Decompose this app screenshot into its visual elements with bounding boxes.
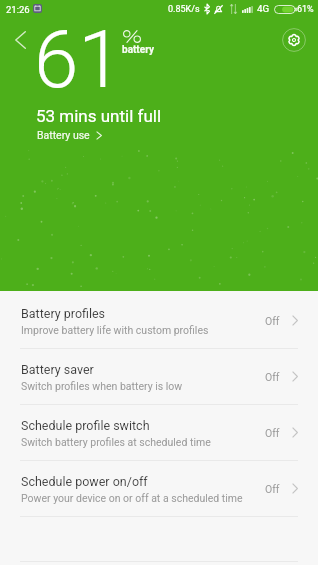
- staticText: 53 mins until full: [36, 106, 162, 126]
- staticText: 4G: [257, 3, 270, 14]
- staticText: 1: [78, 13, 123, 107]
- staticText: 6: [34, 13, 79, 107]
- staticText: Improve battery life with custom profile…: [21, 324, 209, 336]
- staticText: battery: [122, 44, 154, 56]
- staticText: Battery use: [37, 129, 90, 141]
- button[interactable]: Back: [4, 20, 37, 53]
- staticText: Battery profiles: [21, 306, 106, 321]
- staticText: Switch battery profiles at scheduled tim…: [21, 436, 211, 448]
- button[interactable]: Battery profiles: [0, 293, 318, 349]
- staticText: Power your device on or off at a schedul…: [21, 492, 243, 504]
- staticText: Off: [265, 427, 280, 439]
- staticText: Schedule profile switch: [21, 418, 150, 433]
- button[interactable]: Battery saver: [0, 349, 318, 405]
- staticText: 21:26: [6, 4, 30, 15]
- staticText: Off: [265, 483, 280, 495]
- staticText: Schedule power on/off: [21, 474, 148, 489]
- staticText: Battery saver: [21, 362, 94, 377]
- button[interactable]: Settings: [282, 28, 306, 52]
- button[interactable]: Schedule profile switch: [0, 405, 318, 461]
- staticText: 0.85K/s: [168, 4, 200, 15]
- staticText: Off: [265, 371, 280, 383]
- button[interactable]: Battery use: [37, 129, 102, 141]
- staticText: 61%: [297, 4, 314, 15]
- staticText: Off: [265, 315, 280, 327]
- staticText: Switch profiles when battery is low: [21, 380, 183, 392]
- button[interactable]: Schedule power on/off: [0, 461, 318, 517]
